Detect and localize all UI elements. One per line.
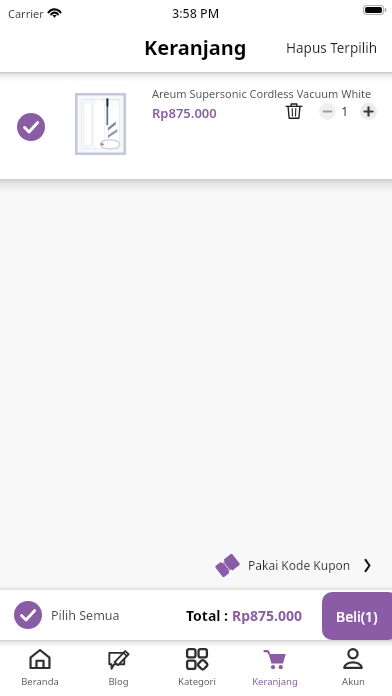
staticText: 3:58 PM bbox=[172, 5, 220, 22]
staticText: 1 bbox=[341, 102, 349, 120]
staticText: Total : bbox=[186, 606, 232, 625]
staticText: Carrier bbox=[8, 6, 44, 21]
button[interactable]: Blog bbox=[79, 640, 158, 696]
button[interactable]: Hapus Terpilih bbox=[274, 30, 392, 68]
button[interactable]: Pakai Kode Kupon bbox=[0, 547, 392, 583]
button[interactable]: Increase quantity bbox=[360, 103, 377, 120]
button[interactable]: Kategori bbox=[158, 640, 236, 696]
staticText: Areum Supersonic Cordless Vacuum White bbox=[152, 86, 372, 101]
staticText: Rp875.000 bbox=[152, 104, 217, 122]
button[interactable]: Decrease quantity bbox=[319, 103, 336, 120]
button[interactable]: Beranda bbox=[0, 640, 79, 696]
button[interactable]: Keranjang bbox=[236, 640, 314, 696]
staticText: Beranda bbox=[21, 675, 59, 688]
staticText: Beli(1) bbox=[336, 607, 378, 626]
staticText: Kategori bbox=[178, 675, 216, 688]
staticText: Akun bbox=[342, 675, 365, 688]
button[interactable]: Select item bbox=[17, 113, 45, 141]
staticText: Rp875.000 bbox=[232, 606, 303, 625]
staticText: Pakai Kode Kupon bbox=[248, 557, 351, 573]
staticText: Pilih Semua bbox=[51, 607, 120, 624]
button[interactable]: Akun bbox=[314, 640, 392, 696]
button[interactable]: Beli(1) bbox=[322, 592, 392, 640]
staticText: Keranjang bbox=[144, 34, 247, 61]
staticText: Blog bbox=[108, 675, 129, 688]
button[interactable]: Delete bbox=[284, 101, 304, 121]
staticText: Keranjang bbox=[252, 675, 298, 688]
staticText: Hapus Terpilih bbox=[286, 39, 378, 57]
button[interactable]: Pilih Semua bbox=[0, 593, 128, 637]
